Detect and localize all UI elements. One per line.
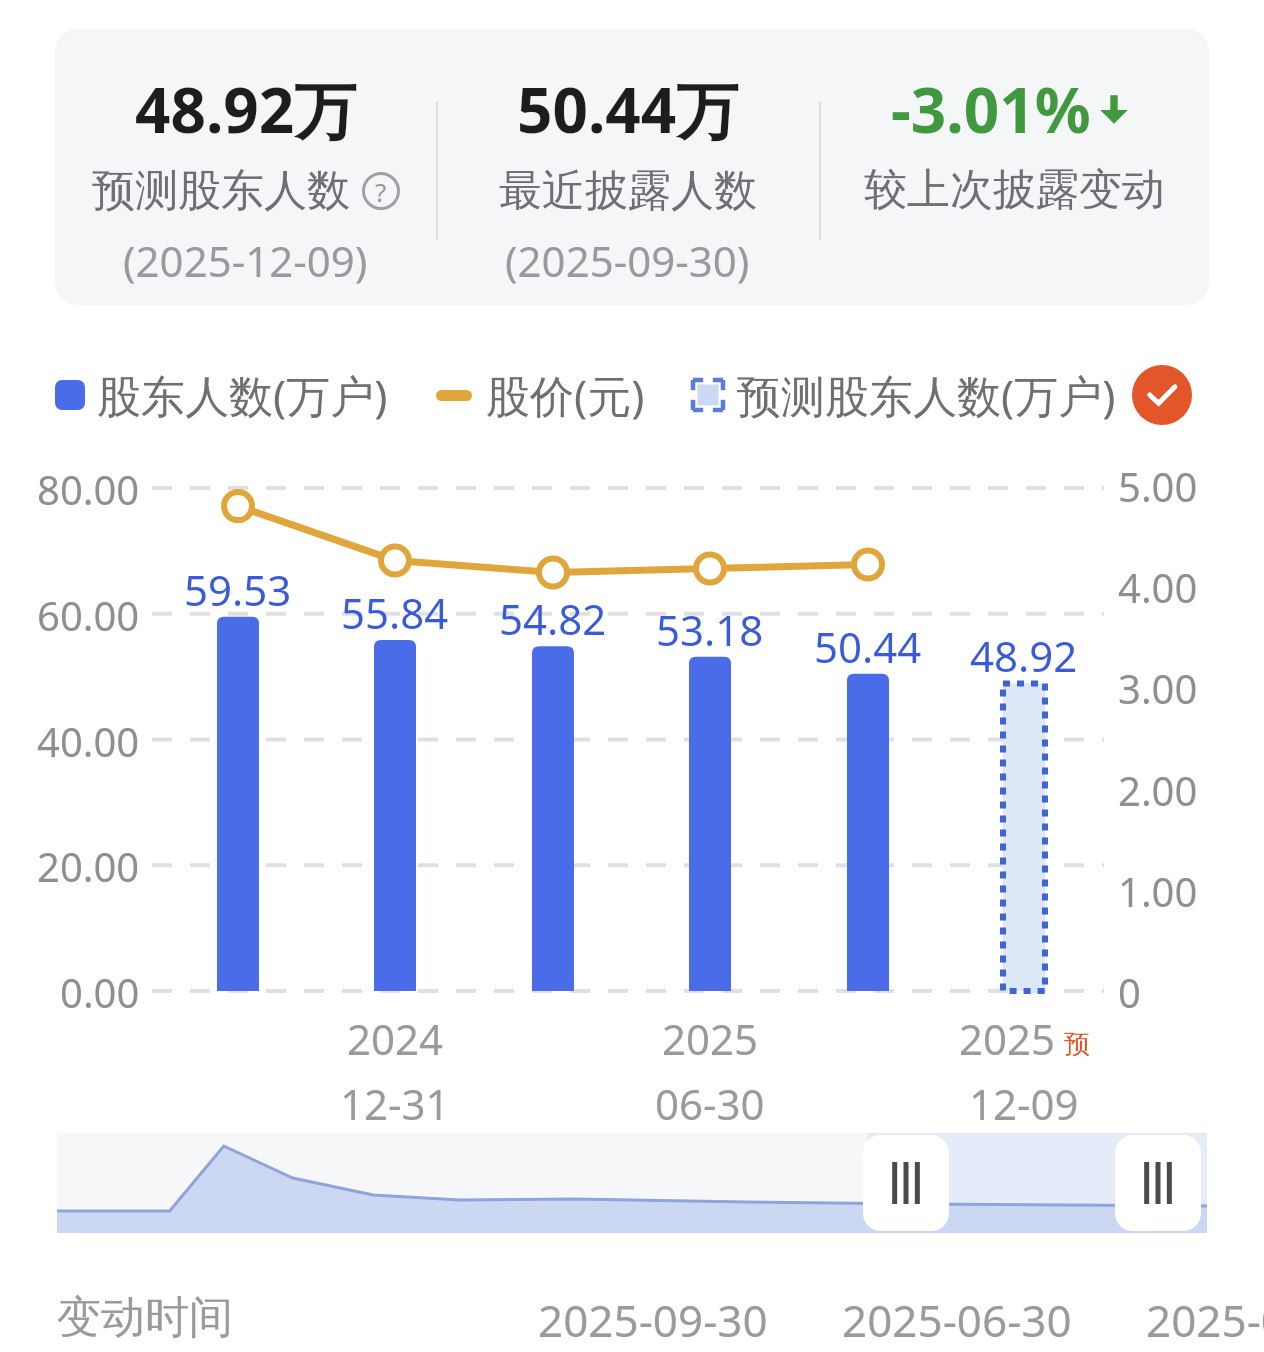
staticText: 1.00 bbox=[1118, 864, 1198, 918]
button[interactable]: 调整范围 bbox=[1115, 1135, 1201, 1231]
staticText: 48.92万 bbox=[135, 67, 357, 152]
staticText: 59.53 bbox=[184, 561, 292, 618]
button[interactable]: 股东人数(万户) bbox=[55, 365, 388, 425]
staticText: 预测股东人数(万户) bbox=[737, 365, 1116, 425]
staticText: 2024 bbox=[347, 1010, 444, 1067]
staticText: 80.00 bbox=[37, 462, 140, 516]
staticText: 预测股东人数 bbox=[92, 164, 350, 218]
staticText: 2025 bbox=[662, 1010, 759, 1067]
staticText: 预 bbox=[1064, 1028, 1090, 1061]
button[interactable]: -3.01% bbox=[819, 29, 1209, 305]
button[interactable]: 48.92万 bbox=[55, 29, 436, 305]
staticText: 变动时间 bbox=[57, 1290, 233, 1345]
staticText: 60.00 bbox=[37, 588, 140, 642]
button[interactable]: 确认选择 bbox=[1132, 365, 1192, 425]
button[interactable]: 48.92万 bbox=[55, 29, 1209, 305]
button[interactable]: 说明 bbox=[362, 172, 400, 210]
button[interactable]: 50.44万 bbox=[436, 29, 819, 305]
staticText: 2025 bbox=[959, 1010, 1056, 1067]
staticText: -3.01% bbox=[891, 67, 1091, 151]
button[interactable]: 调整范围 bbox=[863, 1135, 949, 1231]
staticText: (2025-09-30) bbox=[505, 232, 750, 289]
staticText: 0 bbox=[1118, 965, 1141, 1019]
staticText: 0.00 bbox=[60, 965, 140, 1019]
staticText: ? bbox=[375, 174, 387, 209]
staticText: 20.00 bbox=[37, 839, 140, 893]
staticText: 2025-06-30 bbox=[842, 1290, 1072, 1350]
button[interactable]: 预测股东人数(万户) bbox=[693, 365, 1116, 425]
staticText: 股东人数(万户) bbox=[97, 365, 388, 425]
staticText: 54.82 bbox=[499, 590, 607, 647]
staticText: 55.84 bbox=[341, 584, 449, 641]
staticText: 48.92 bbox=[970, 627, 1078, 684]
staticText: 股价(元) bbox=[486, 365, 645, 425]
staticText: 4.00 bbox=[1118, 560, 1198, 614]
staticText: 3.00 bbox=[1118, 661, 1198, 715]
staticText: 2025-0 bbox=[1146, 1290, 1264, 1350]
staticText: 50.44 bbox=[814, 618, 922, 675]
staticText: 06-30 bbox=[655, 1075, 765, 1132]
staticText: 2.00 bbox=[1118, 763, 1198, 817]
staticText: 较上次披露变动 bbox=[864, 163, 1165, 217]
staticText: (2025-12-09) bbox=[123, 232, 368, 289]
button[interactable]: 股价(元) bbox=[436, 365, 645, 425]
staticText: 最近披露人数 bbox=[499, 164, 757, 218]
button[interactable]: 调整范围 bbox=[57, 1133, 1207, 1233]
staticText: 50.44万 bbox=[517, 67, 739, 152]
staticText: 53.18 bbox=[656, 601, 764, 658]
staticText: 12-09 bbox=[969, 1075, 1079, 1132]
staticText: 5.00 bbox=[1118, 459, 1198, 513]
staticText: 2025-09-30 bbox=[538, 1290, 768, 1350]
staticText: 40.00 bbox=[37, 714, 140, 768]
staticText: 12-31 bbox=[340, 1075, 450, 1132]
